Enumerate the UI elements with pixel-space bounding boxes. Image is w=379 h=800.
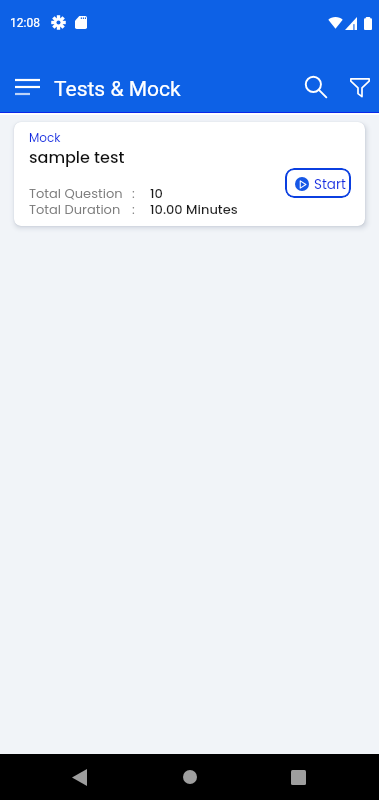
staticText: 10.00 Minutes bbox=[150, 200, 238, 218]
staticText: : bbox=[132, 200, 135, 218]
staticText: Mock bbox=[29, 129, 61, 146]
button[interactable]: Open navigation menu bbox=[5, 67, 49, 107]
staticText: 10 bbox=[150, 184, 163, 202]
staticText: Start bbox=[314, 175, 346, 194]
button[interactable]: Recent apps bbox=[274, 754, 322, 800]
button[interactable]: Filter bbox=[340, 67, 379, 107]
staticText: Total Duration bbox=[29, 200, 121, 218]
button[interactable]: Back bbox=[55, 754, 103, 800]
button[interactable]: Search bbox=[296, 67, 336, 107]
staticText: Total Question bbox=[29, 184, 123, 202]
button[interactable]: Mock bbox=[14, 122, 365, 226]
button[interactable]: Start bbox=[285, 168, 351, 198]
button[interactable]: Home bbox=[166, 754, 214, 800]
staticText: 12:08 bbox=[10, 16, 40, 30]
staticText: : bbox=[132, 184, 135, 202]
staticText: sample test bbox=[29, 146, 125, 168]
staticText: Tests & Mock bbox=[54, 77, 181, 102]
